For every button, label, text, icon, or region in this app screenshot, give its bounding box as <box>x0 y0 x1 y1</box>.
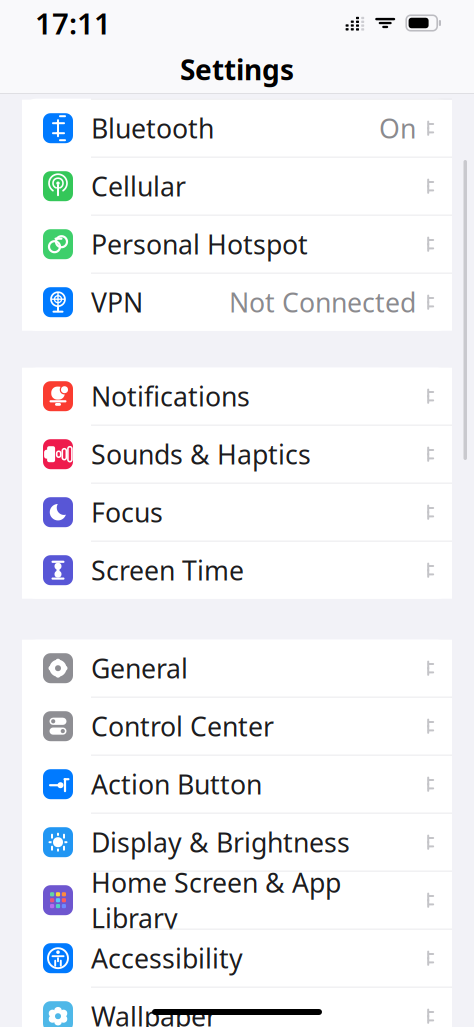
button[interactable]: Screen Time <box>22 542 452 599</box>
staticText: 17:11 <box>35 3 111 42</box>
staticText: Notifications <box>91 378 250 414</box>
staticText: Bluetooth <box>91 110 214 146</box>
staticText: Cellular <box>91 168 186 204</box>
button[interactable]: Accessibility <box>22 930 452 987</box>
button[interactable]: Bluetooth <box>22 100 452 157</box>
staticText: On <box>379 110 416 146</box>
button[interactable]: Home Screen & App Library <box>22 872 452 929</box>
staticText: Focus <box>91 494 163 530</box>
staticText: Home Screen & App Library <box>91 865 341 936</box>
staticText: Wallpaper <box>91 998 217 1027</box>
staticText: Display & Brightness <box>91 824 350 860</box>
button[interactable]: General <box>22 640 452 697</box>
button[interactable]: VPN <box>22 274 452 331</box>
button[interactable]: Personal Hotspot <box>22 216 452 273</box>
staticText: Not Connected <box>229 284 416 320</box>
staticText: Control Center <box>91 708 274 744</box>
button[interactable]: Wallpaper <box>22 988 452 1027</box>
staticText: Action Button <box>91 766 262 802</box>
button[interactable]: Display & Brightness <box>22 814 452 871</box>
button[interactable]: Control Center <box>22 698 452 755</box>
staticText: Sounds & Haptics <box>91 436 311 472</box>
staticText: General <box>91 650 188 686</box>
staticText: Settings <box>180 51 294 88</box>
button[interactable]: Notifications <box>22 368 452 425</box>
button[interactable]: Action Button <box>22 756 452 813</box>
staticText: Personal Hotspot <box>91 226 308 262</box>
staticText: Screen Time <box>91 552 244 588</box>
staticText: Accessibility <box>91 940 243 976</box>
staticText: VPN <box>91 284 143 320</box>
button[interactable]: Focus <box>22 484 452 541</box>
button[interactable]: Cellular <box>22 158 452 215</box>
button[interactable]: Sounds & Haptics <box>22 426 452 483</box>
